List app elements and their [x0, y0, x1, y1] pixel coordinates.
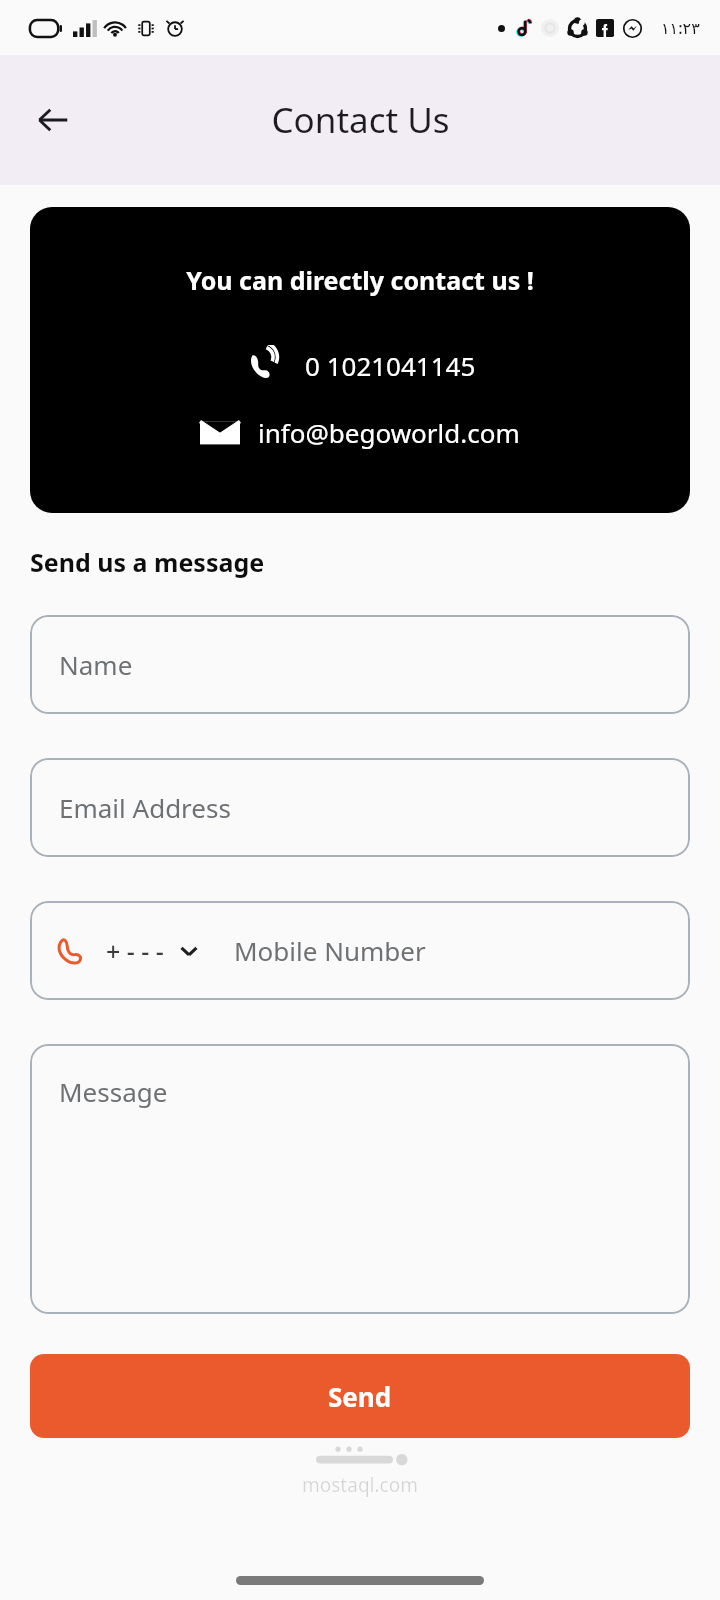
staticText: Email Address	[59, 790, 231, 825]
staticText: info@begoworld.com	[258, 415, 520, 450]
button[interactable]: Back	[22, 89, 84, 151]
staticText: Send	[328, 1379, 392, 1414]
staticText: Send us a message	[30, 545, 265, 579]
staticText: Name	[59, 647, 133, 682]
staticText: Message	[59, 1074, 168, 1109]
staticText: You can directly contact us !	[186, 263, 534, 297]
staticText: Contact Us	[271, 96, 450, 144]
button[interactable]: Email Address	[30, 758, 690, 857]
button[interactable]: 0 1021041145	[239, 345, 482, 385]
staticText: + - - -	[106, 934, 164, 968]
button[interactable]: Message	[30, 1044, 690, 1314]
staticText: ١١:٢٣	[661, 17, 700, 39]
button[interactable]: + - - -	[30, 901, 690, 1000]
button[interactable]: Send	[30, 1354, 690, 1438]
staticText: mostaql.com	[302, 1472, 418, 1498]
button[interactable]: info@begoworld.com	[194, 413, 526, 452]
button[interactable]: Name	[30, 615, 690, 714]
staticText: 0 1021041145	[305, 348, 476, 383]
staticText: Mobile Number	[234, 933, 426, 968]
